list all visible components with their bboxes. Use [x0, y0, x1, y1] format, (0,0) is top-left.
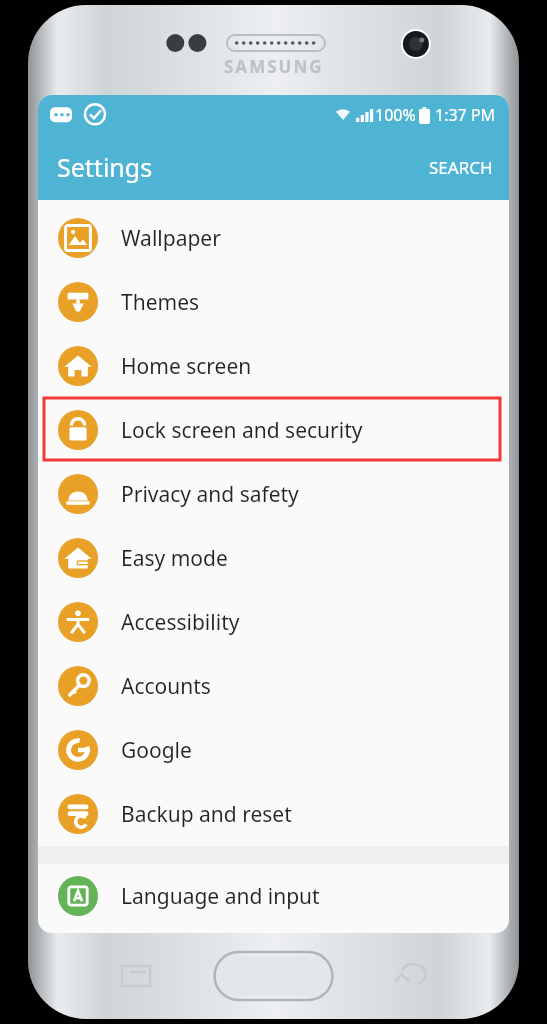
button[interactable]: Privacy and safety — [38, 462, 509, 526]
staticText: Easy mode — [121, 544, 228, 573]
button[interactable]: Lock screen and security — [38, 398, 509, 462]
button[interactable]: Accessibility — [38, 590, 509, 654]
button[interactable]: Backup and reset — [38, 782, 509, 846]
button[interactable]: Themes — [38, 270, 509, 334]
staticText: 1:37 PM — [435, 104, 496, 126]
staticText: Accessibility — [121, 608, 240, 637]
staticText: Backup and reset — [121, 800, 292, 829]
staticText: Privacy and safety — [121, 480, 299, 509]
staticText: Themes — [121, 288, 200, 317]
button[interactable]: Easy mode — [38, 526, 509, 590]
staticText: Language and input — [121, 882, 320, 911]
staticText: Lock screen and security — [121, 416, 363, 445]
staticText: SEARCH — [429, 156, 493, 179]
staticText: Accounts — [121, 672, 211, 701]
button[interactable]: Home screen — [38, 334, 509, 398]
staticText: Home screen — [121, 352, 252, 381]
staticText: 100% — [375, 104, 416, 126]
staticText: SAMSUNG — [224, 55, 324, 78]
staticText: Settings — [57, 150, 153, 184]
staticText: Google — [121, 736, 192, 765]
button[interactable]: Google — [38, 718, 509, 782]
button[interactable]: Language and input — [38, 864, 509, 928]
button[interactable]: Wallpaper — [38, 206, 509, 270]
staticText: Wallpaper — [121, 224, 221, 253]
button[interactable]: SEARCH — [413, 144, 509, 191]
button[interactable]: Accounts — [38, 654, 509, 718]
